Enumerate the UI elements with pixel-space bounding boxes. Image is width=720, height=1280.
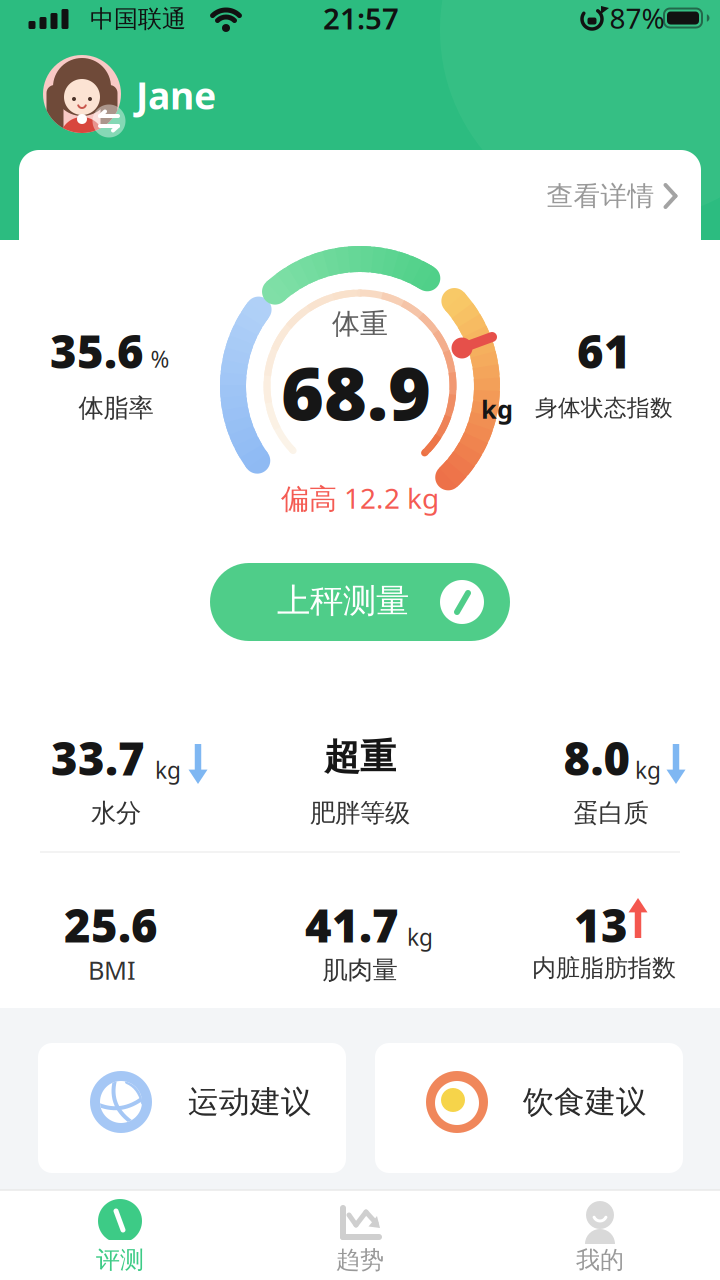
staticText: 身体状态指数 [535, 394, 673, 422]
staticText: 体重 [332, 307, 388, 341]
staticText: 查看详情 [546, 180, 654, 212]
staticText: 87% [609, 0, 664, 37]
staticText: 肥胖等级 [310, 797, 410, 828]
button[interactable]: 趋势 [330, 1201, 390, 1273]
staticText: 68.9 [281, 343, 431, 441]
staticText: 35.6 [50, 321, 144, 381]
staticText: 21:57 [323, 0, 399, 37]
staticText: 我的 [576, 1245, 624, 1275]
staticText: kg [635, 755, 661, 785]
button[interactable]: 查看详情 [546, 180, 677, 212]
button[interactable]: 上秤测量 [210, 563, 510, 641]
staticText: % [150, 344, 169, 374]
button[interactable]: 评测 [90, 1201, 150, 1273]
staticText: 评测 [96, 1245, 144, 1275]
staticText: 33.7 [51, 728, 145, 788]
staticText: 25.6 [64, 895, 158, 955]
staticText: kg [407, 922, 433, 952]
staticText: 饮食建议 [523, 1083, 647, 1121]
staticText: 8.0 [563, 728, 630, 788]
staticText: 13 [574, 895, 628, 955]
button[interactable]: 饮食建议 [375, 1043, 683, 1173]
staticText: 上秤测量 [277, 580, 409, 621]
staticText: BMI [88, 953, 136, 987]
staticText: 内脏脂肪指数 [532, 953, 676, 983]
staticText: 蛋白质 [573, 797, 648, 828]
staticText: 41.7 [305, 895, 399, 955]
staticText: 中国联通 [90, 4, 186, 34]
staticText: kg [155, 755, 181, 785]
staticText: 趋势 [336, 1245, 384, 1275]
staticText: 水分 [91, 797, 141, 828]
staticText: 61 [577, 321, 631, 381]
staticText: 偏高 12.2 kg [281, 479, 439, 517]
button[interactable]: 切换用户 [40, 52, 128, 140]
staticText: 运动建议 [188, 1083, 312, 1121]
staticText: 体脂率 [78, 392, 153, 423]
staticText: 超重 [324, 735, 396, 779]
staticText: 肌肉量 [322, 954, 397, 985]
button[interactable]: 我的 [570, 1201, 630, 1273]
button[interactable]: 运动建议 [38, 1043, 346, 1173]
staticText: Jane [136, 70, 216, 120]
staticText: kg [481, 392, 513, 426]
